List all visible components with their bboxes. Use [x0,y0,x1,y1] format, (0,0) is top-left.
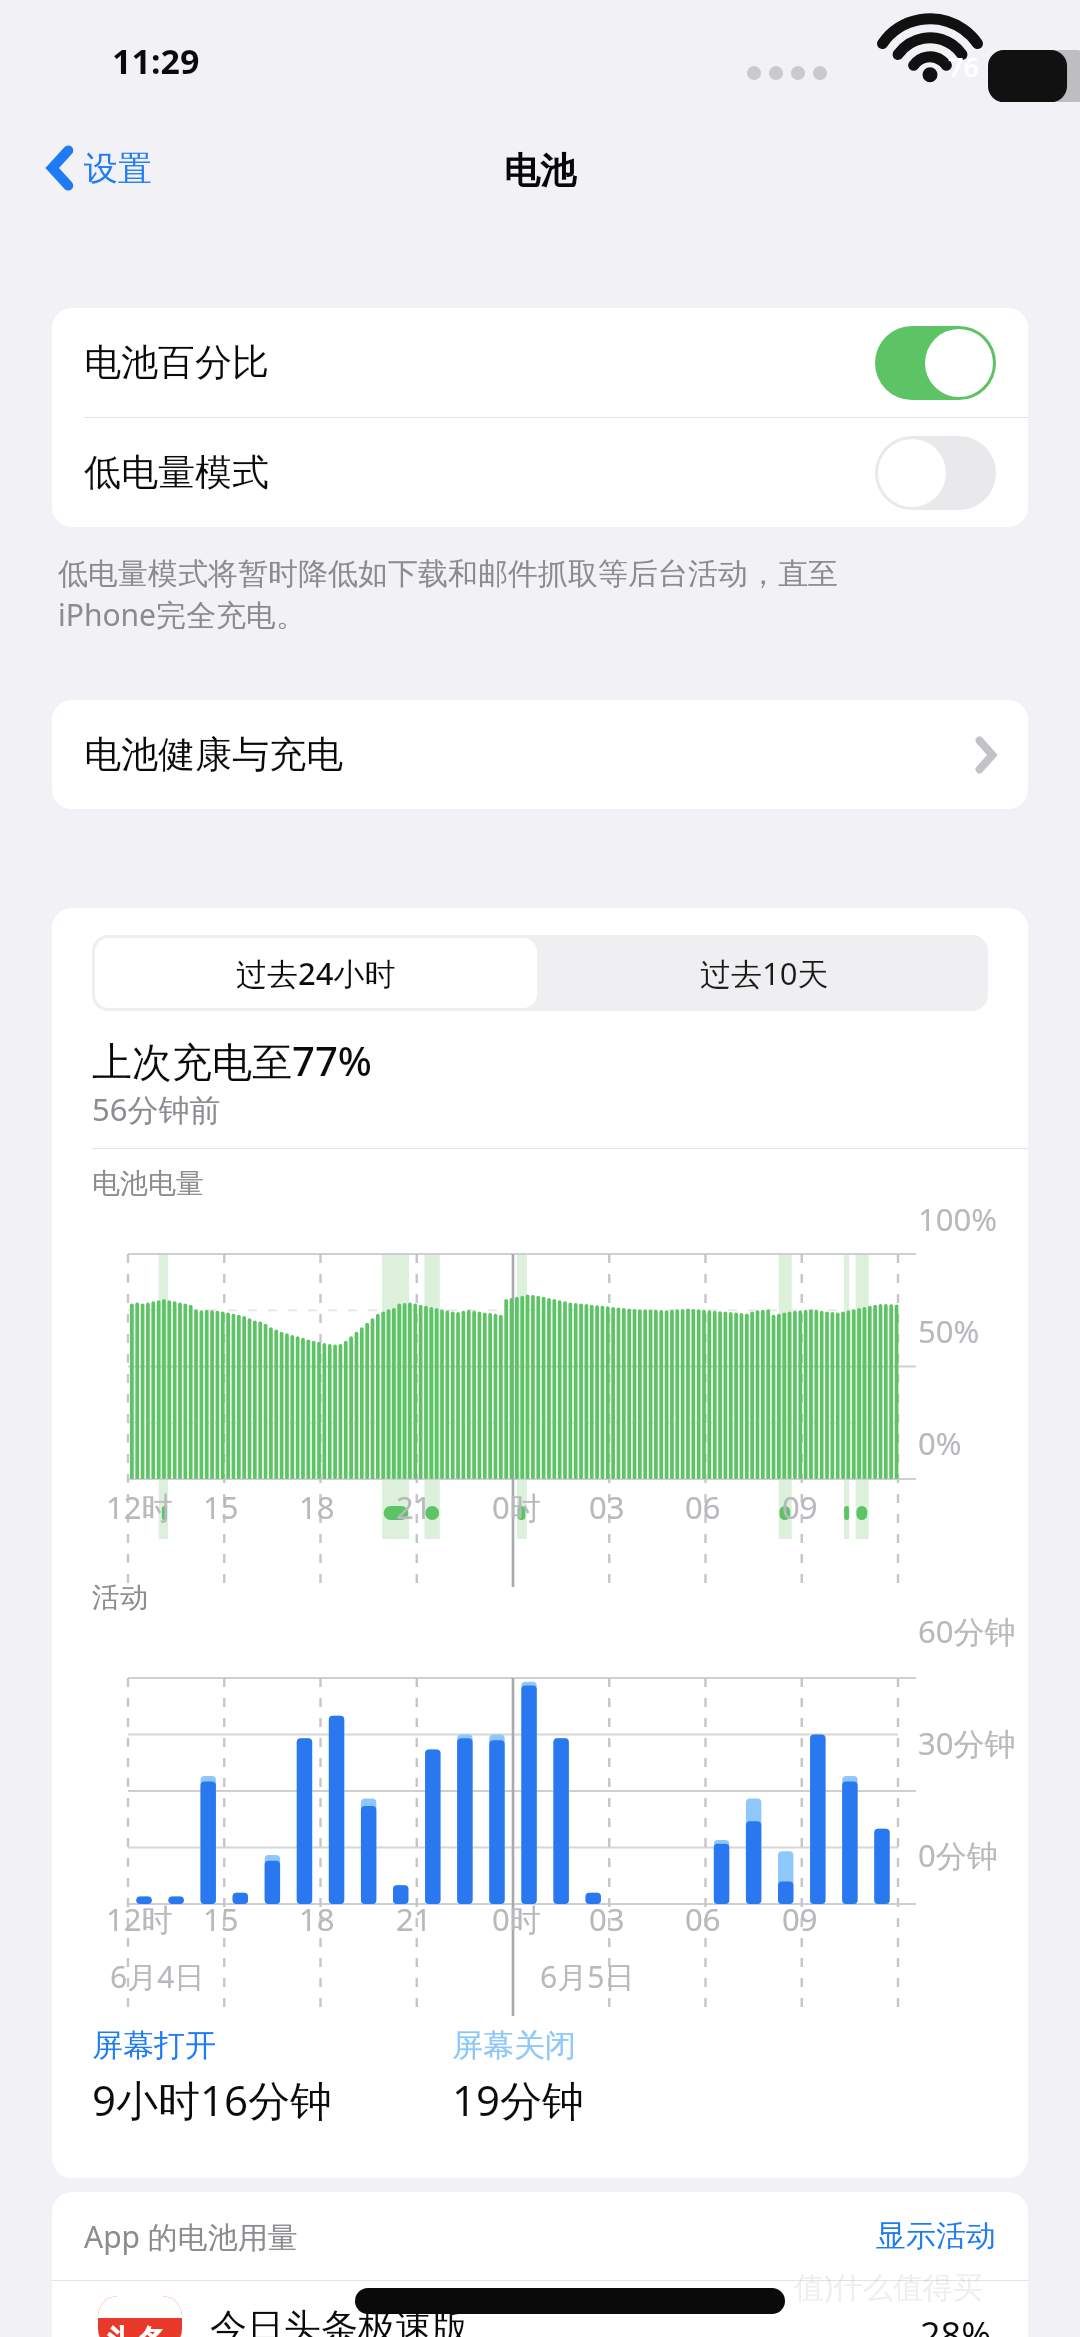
staticText: 显示活动 [876,2217,996,2255]
staticText: 电池健康与充电 [84,731,343,778]
staticText: 19分钟 [452,2071,585,2128]
button[interactable]: 电池健康与充电 [52,700,1028,809]
staticText: 过去24小时 [236,952,396,994]
staticText: 今日头条极速版 [210,2304,469,2337]
button[interactable]: 电池百分比 [52,308,1028,417]
staticText: 15 [203,1486,239,1528]
staticText: 06 [685,1486,721,1528]
staticText: 头条 [104,2322,168,2337]
staticText: 活动 [92,1580,148,1615]
button[interactable]: 设置 [40,140,160,196]
staticText: 28% [920,2310,992,2337]
staticText: 过去10天 [700,952,829,994]
staticText: 电池电量 [92,1166,204,1201]
staticText: 6月4日 [110,1956,205,1997]
staticText: 电池百分比 [84,339,269,386]
staticText: 09 [782,1898,818,1940]
staticText: 09 [782,1486,818,1528]
button[interactable]: 头条 [52,2284,1028,2337]
staticText: 低电量模式将暂时降低如下载和邮件抓取等后台活动，直至 iPhone完全充电。 [58,555,838,635]
staticText: 56分钟前 [92,1088,221,1130]
staticText: 9小时16分钟 [92,2071,333,2128]
button[interactable]: 过去10天 [540,935,988,1011]
staticText: 0分钟 [918,1834,998,1876]
staticText: 12时 [106,1486,173,1528]
staticText: 76 [948,48,979,85]
staticText: 18 [299,1898,335,1940]
staticText: 设置 [84,147,152,190]
staticText: 50% [918,1310,980,1352]
staticText: 60分钟 [918,1610,1016,1652]
staticText: 上次充电至77% [92,1033,372,1088]
staticText: 0时 [492,1486,541,1528]
staticText: 0% [918,1422,962,1464]
staticText: 电池 [504,148,576,193]
staticText: 15 [203,1898,239,1940]
staticText: 100% [918,1198,997,1240]
staticText: 12时 [106,1898,173,1940]
staticText: App 的电池用量 [84,2216,298,2257]
staticText: 21 [396,1898,432,1940]
staticText: 03 [589,1486,625,1528]
button[interactable]: 过去24小时 [95,938,537,1008]
staticText: 屏幕关闭 [452,2026,576,2065]
staticText: 6月5日 [540,1956,635,1997]
staticText: 值)什么值得买 [794,2266,983,2307]
button[interactable]: 显示活动 [876,2217,996,2255]
staticText: 屏幕打开 [92,2026,216,2065]
staticText: 21 [396,1486,432,1528]
staticText: 30分钟 [918,1722,1016,1764]
staticText: 06 [685,1898,721,1940]
staticText: 18 [299,1486,335,1528]
staticText: 0时 [492,1898,541,1940]
staticText: 11:29 [112,38,200,84]
button[interactable]: 低电量模式 [52,418,1028,527]
staticText: 03 [589,1898,625,1940]
other: Home indicator [355,2288,785,2314]
staticText: 低电量模式 [84,449,269,496]
